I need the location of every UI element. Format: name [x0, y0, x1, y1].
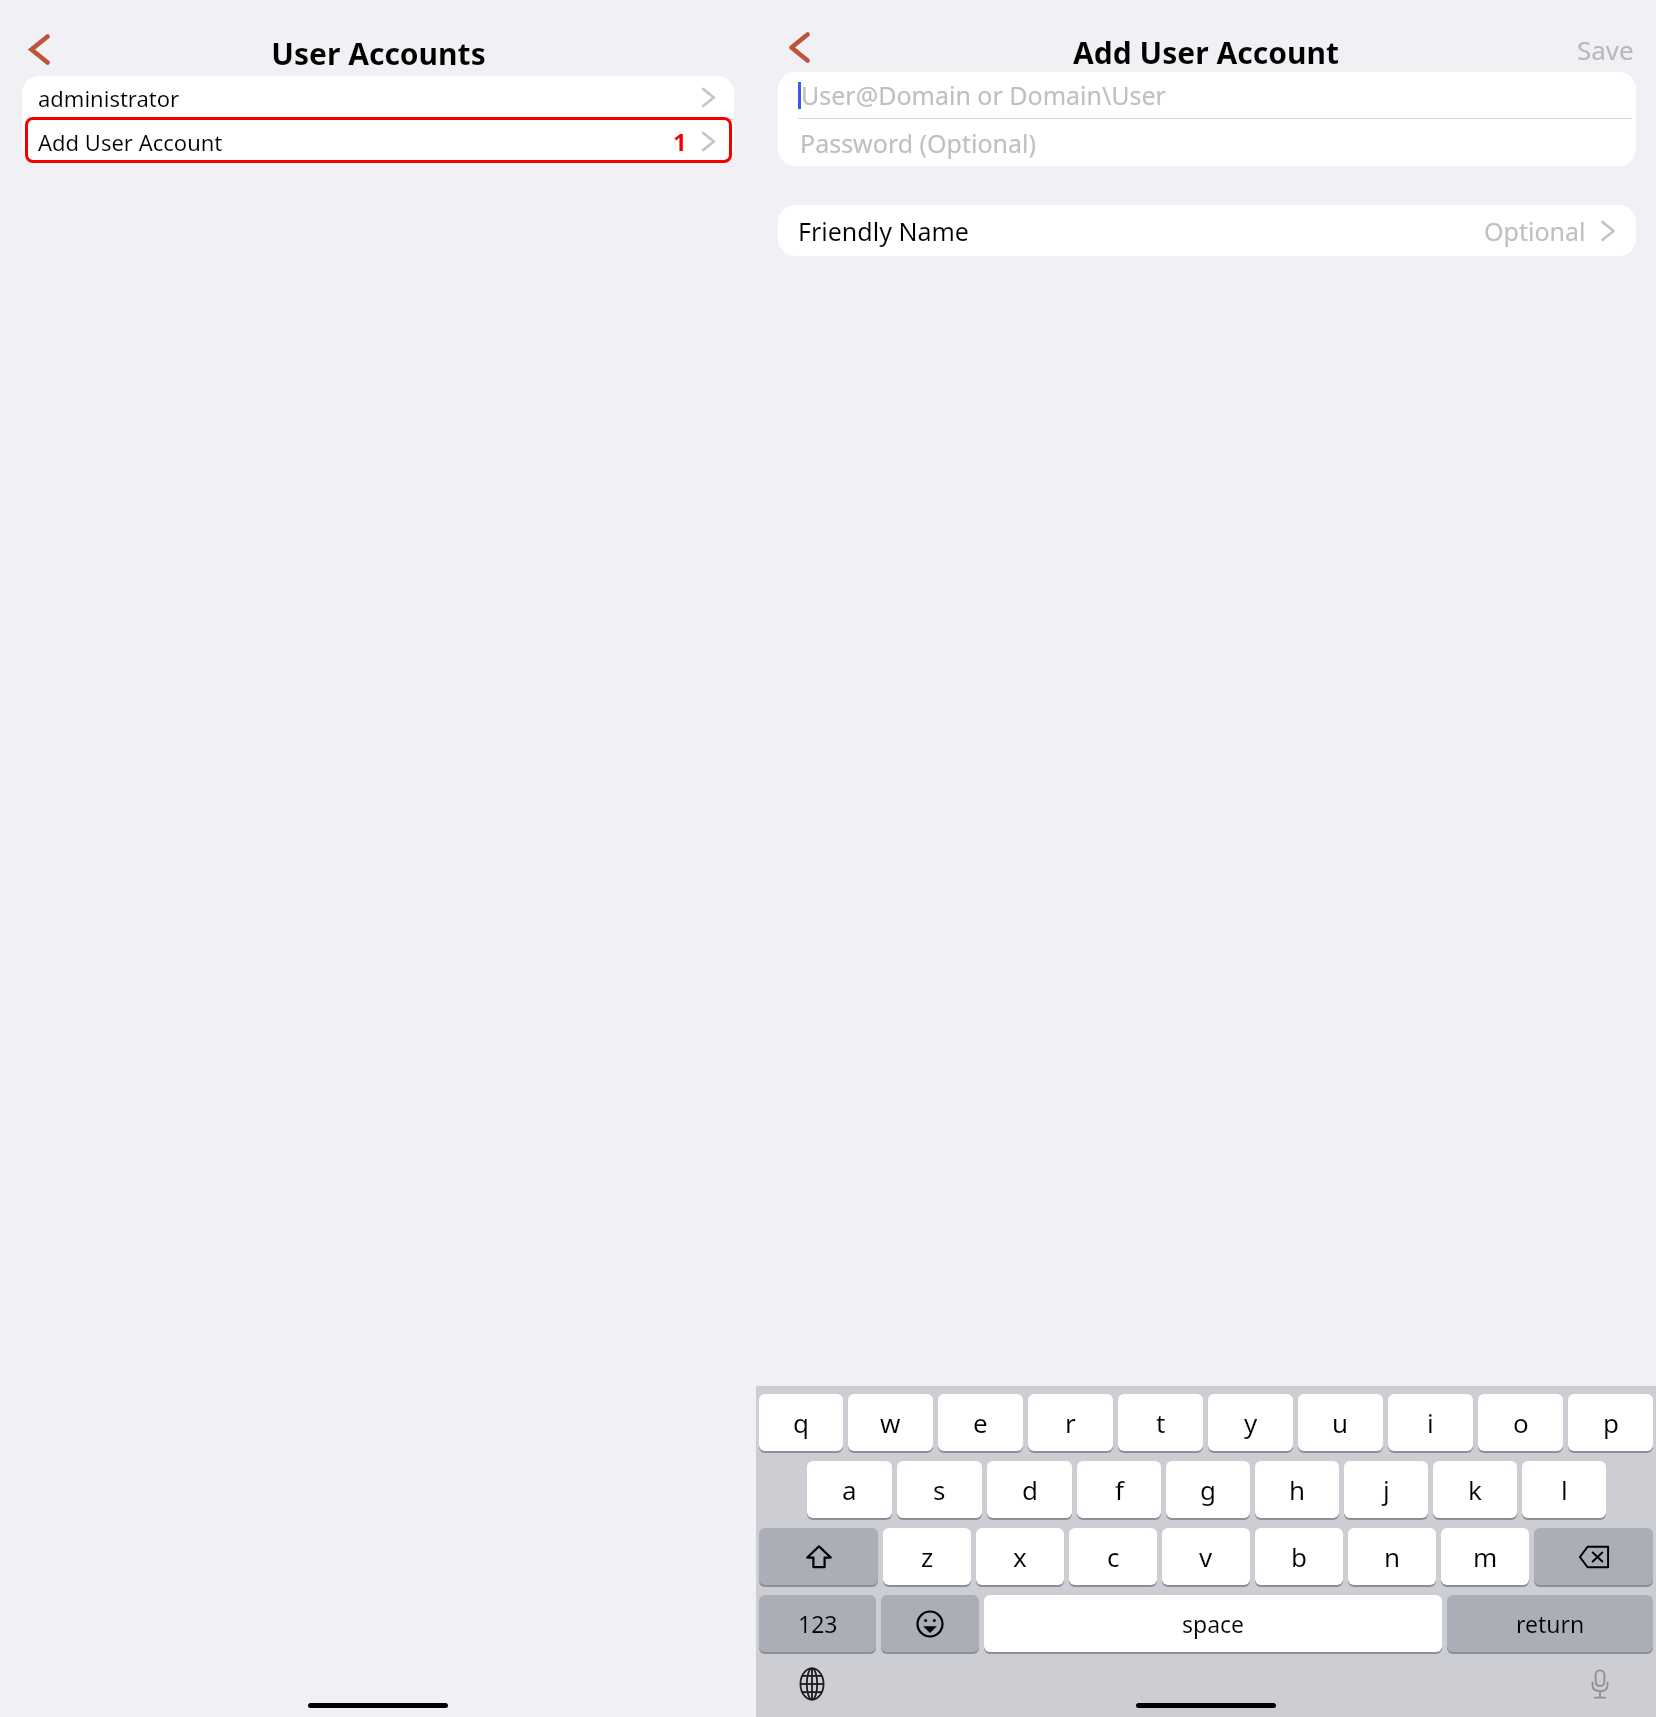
staticText: y [1244, 1405, 1258, 1440]
staticText: n [1384, 1539, 1401, 1574]
staticText: d [1022, 1472, 1038, 1507]
staticText: f [1115, 1472, 1124, 1507]
button[interactable]: a [807, 1461, 892, 1518]
staticText: g [1200, 1472, 1216, 1507]
staticText: 2 [796, 68, 811, 102]
button[interactable]: 123 [759, 1595, 876, 1652]
button[interactable]: return [1447, 1595, 1653, 1652]
staticText: p [1603, 1405, 1619, 1440]
button[interactable]: l [1522, 1461, 1606, 1518]
staticText: z [921, 1539, 934, 1574]
button[interactable]: p [1568, 1394, 1653, 1451]
staticText: w [880, 1405, 901, 1440]
staticText: Save [1577, 32, 1634, 67]
staticText: u [1332, 1405, 1349, 1440]
button[interactable]: Backspace [1534, 1528, 1653, 1585]
button[interactable]: administrator [22, 76, 734, 119]
staticText: Friendly Name [798, 214, 969, 248]
button[interactable]: y [1208, 1394, 1293, 1451]
staticText: c [1107, 1539, 1120, 1574]
button[interactable]: c [1069, 1528, 1157, 1585]
button[interactable]: h [1255, 1461, 1339, 1518]
button[interactable]: w [848, 1394, 933, 1451]
button[interactable]: i [1388, 1394, 1473, 1451]
button[interactable]: Password (Optional) [778, 119, 1636, 166]
button[interactable]: k [1433, 1461, 1517, 1518]
button[interactable]: Friendly Name [778, 205, 1636, 256]
staticText: User@Domain or Domain\User [801, 78, 1166, 112]
button[interactable]: Emoji [881, 1595, 979, 1652]
button[interactable]: s [897, 1461, 982, 1518]
button[interactable]: d [987, 1461, 1072, 1518]
staticText: m [1473, 1539, 1498, 1574]
staticText: Optional [1484, 214, 1586, 248]
staticText: x [1013, 1539, 1027, 1574]
button[interactable]: Save [1569, 26, 1642, 73]
staticText: j [1383, 1472, 1390, 1507]
staticText: Add User Account [1073, 32, 1339, 73]
staticText: v [1199, 1539, 1213, 1574]
button[interactable]: q [759, 1394, 843, 1451]
staticText: k [1468, 1472, 1482, 1507]
staticText: a [842, 1472, 857, 1507]
staticText: b [1291, 1539, 1307, 1574]
staticText: User Accounts [271, 33, 486, 74]
button[interactable]: Dictate [1580, 1664, 1620, 1704]
button[interactable]: z [883, 1528, 971, 1585]
button[interactable]: Shift [759, 1528, 878, 1585]
button[interactable]: m [1441, 1528, 1529, 1585]
button[interactable]: o [1478, 1394, 1563, 1451]
staticText: t [1156, 1405, 1166, 1440]
staticText: e [973, 1405, 988, 1440]
staticText: i [1427, 1405, 1434, 1440]
staticText: 1 [673, 125, 687, 158]
button[interactable]: User@Domain or Domain\User [778, 72, 1636, 118]
button[interactable]: j [1344, 1461, 1428, 1518]
staticText: q [793, 1405, 809, 1440]
button[interactable]: Change keyboard [792, 1664, 832, 1704]
button[interactable]: Back [8, 18, 70, 80]
button[interactable]: t [1118, 1394, 1203, 1451]
button[interactable]: g [1166, 1461, 1250, 1518]
staticText: h [1289, 1472, 1306, 1507]
button[interactable]: u [1298, 1394, 1383, 1451]
staticText: space [1182, 1608, 1245, 1639]
staticText: Password (Optional) [800, 126, 1037, 160]
staticText: Add User Account [38, 127, 223, 157]
staticText: o [1513, 1405, 1529, 1440]
staticText: return [1516, 1608, 1585, 1639]
staticText: s [933, 1472, 946, 1507]
button[interactable]: b [1255, 1528, 1343, 1585]
button[interactable]: space [984, 1595, 1442, 1652]
staticText: administrator [38, 83, 180, 113]
staticText: 123 [798, 1608, 838, 1639]
button[interactable]: v [1162, 1528, 1250, 1585]
button[interactable]: e [938, 1394, 1023, 1451]
staticText: l [1561, 1472, 1568, 1507]
button[interactable]: r [1028, 1394, 1113, 1451]
button[interactable]: n [1348, 1528, 1436, 1585]
button[interactable]: Back [768, 16, 830, 78]
button[interactable]: x [976, 1528, 1064, 1585]
button[interactable]: Add User Account [22, 120, 734, 163]
button[interactable]: f [1077, 1461, 1161, 1518]
staticText: r [1065, 1405, 1076, 1440]
